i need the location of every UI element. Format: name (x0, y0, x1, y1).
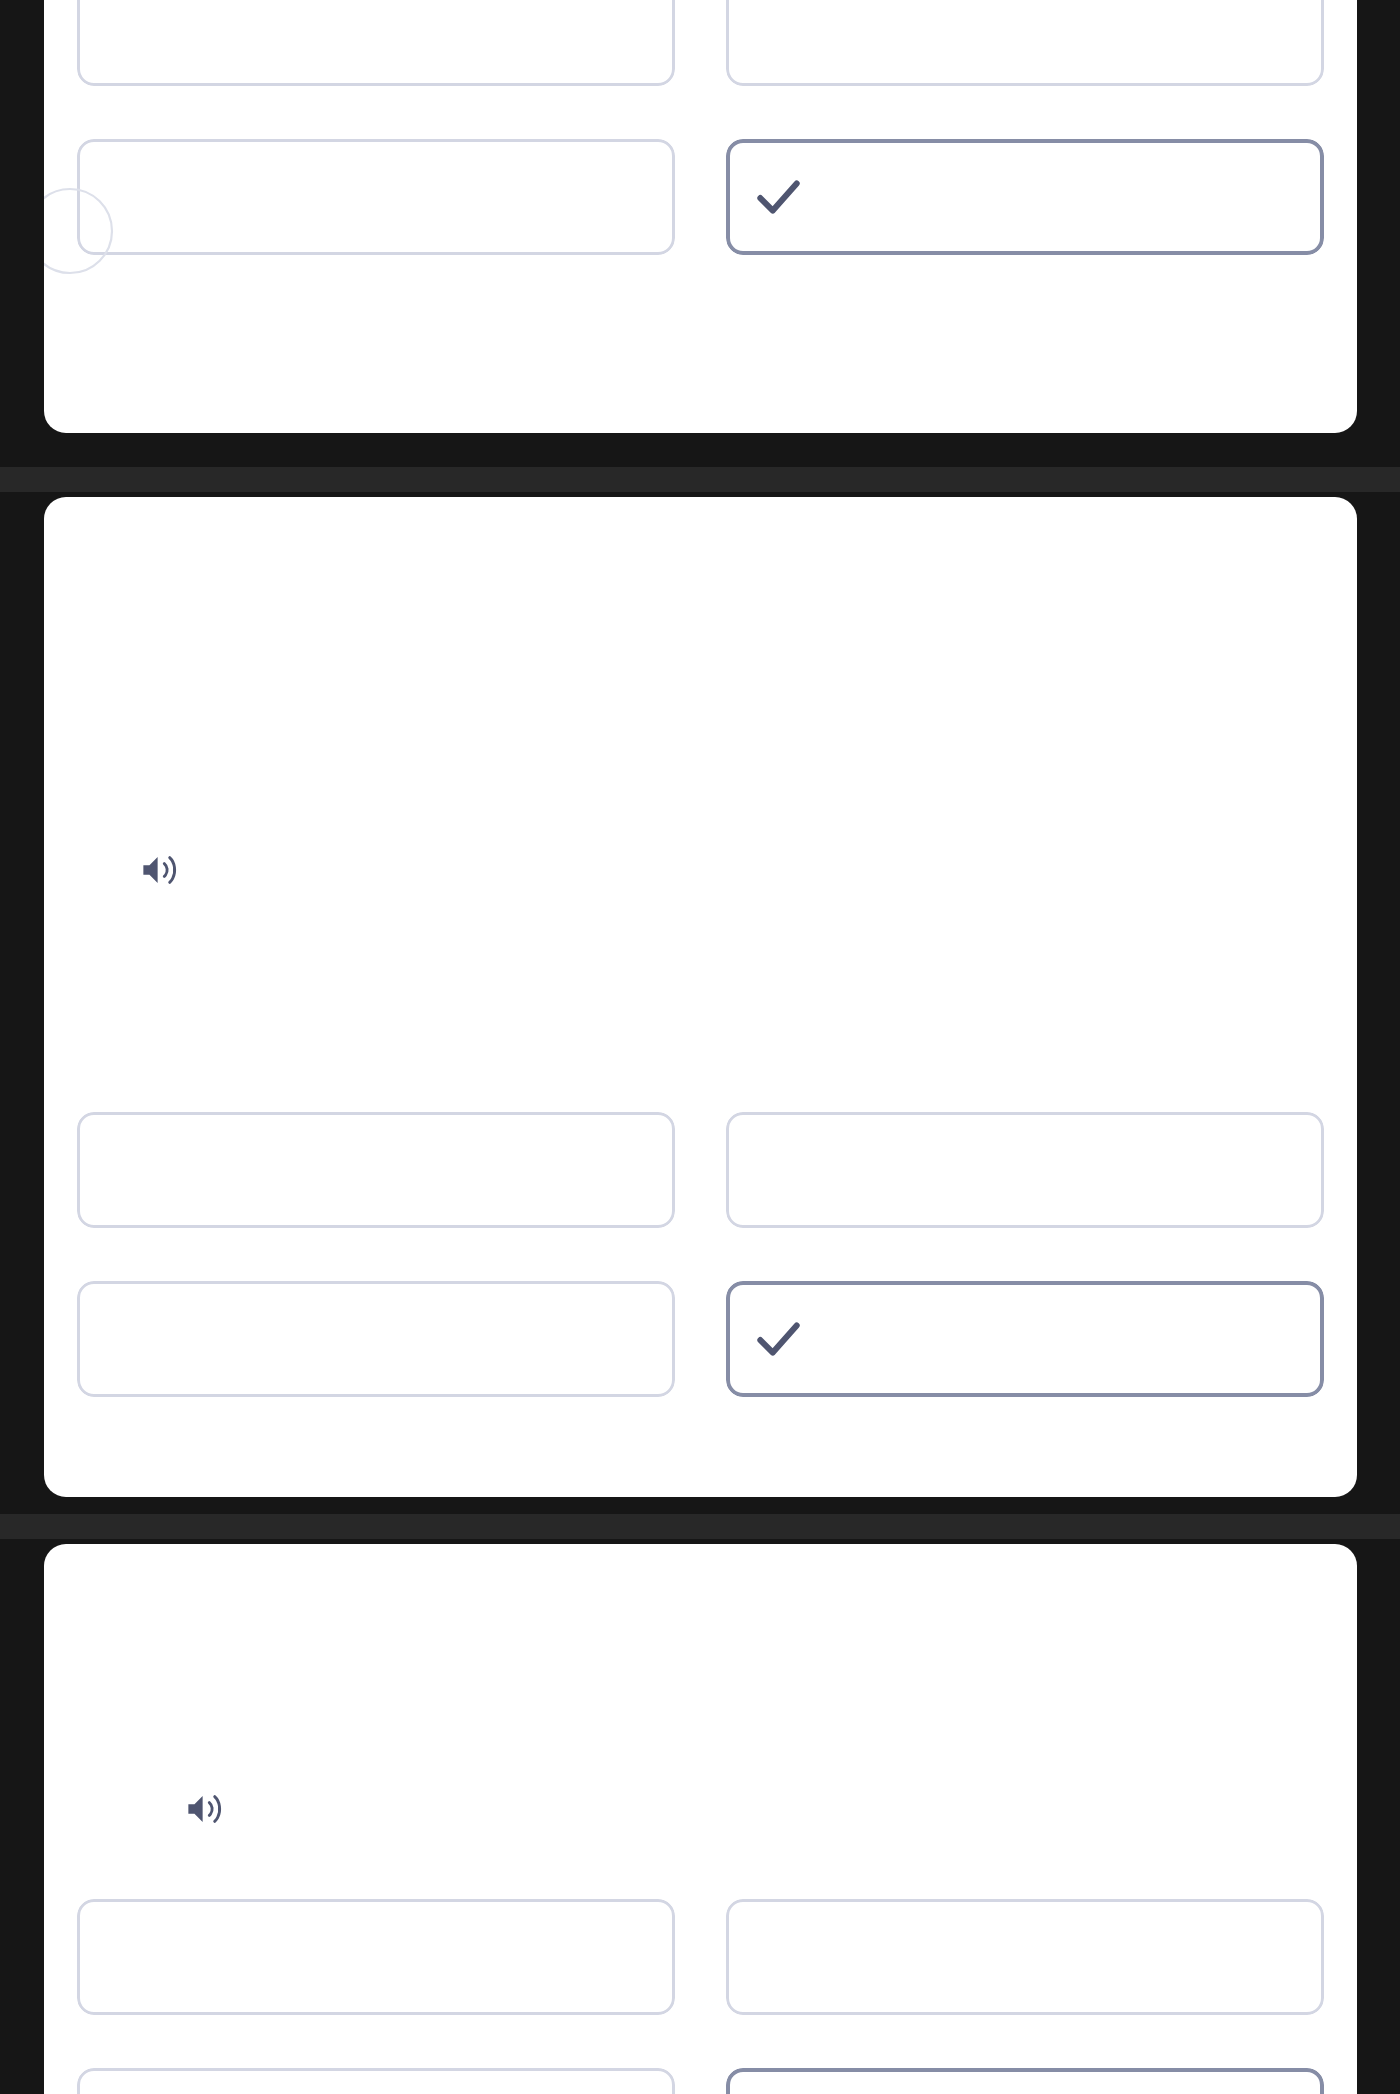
button[interactable]: Correct answer (726, 139, 1324, 255)
button[interactable]: Answer option (77, 1281, 675, 1397)
button[interactable]: Answer option (77, 0, 675, 86)
button[interactable]: Play audio (181, 1786, 227, 1832)
button[interactable]: Answer option (77, 139, 675, 255)
button[interactable]: Play audio (136, 847, 182, 893)
button[interactable]: Answer option (726, 1112, 1324, 1228)
button[interactable]: Correct answer (726, 2068, 1324, 2094)
button[interactable]: Answer option (77, 1899, 675, 2015)
button[interactable]: Answer option (726, 1899, 1324, 2015)
button[interactable]: Answer option (726, 0, 1324, 86)
button[interactable]: Answer option (77, 2068, 675, 2094)
button[interactable]: Correct answer (726, 1281, 1324, 1397)
button[interactable]: Answer option (77, 1112, 675, 1228)
